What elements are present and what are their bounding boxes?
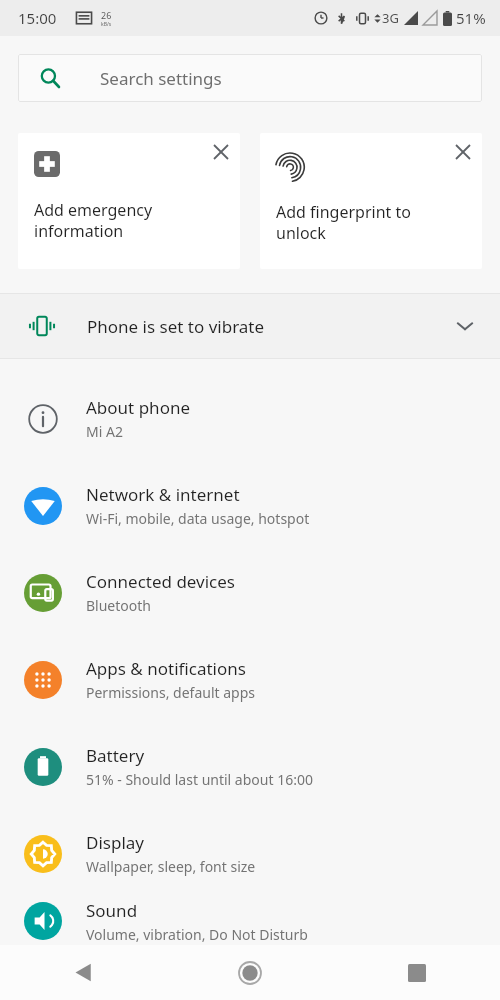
staticText: Bluetooth (86, 596, 151, 615)
button[interactable]: Home (166, 945, 333, 1000)
staticText: Add emergency information (34, 199, 153, 242)
staticText: 51% (456, 8, 486, 28)
staticText: 51% - Should last until about 16:00 (86, 770, 313, 789)
staticText: Permissions, default apps (86, 683, 256, 702)
staticText: Sound (86, 899, 138, 922)
button[interactable]: Display (0, 810, 500, 897)
button[interactable]: Apps & notifications (0, 636, 500, 723)
button[interactable]: Battery (0, 723, 500, 810)
button[interactable]: Dismiss (444, 133, 482, 171)
staticText: Wallpaper, sleep, font size (86, 857, 256, 876)
button[interactable]: About phone (0, 375, 500, 462)
staticText: Mi A2 (86, 422, 123, 441)
staticText: Wi-Fi, mobile, data usage, hotspot (86, 509, 310, 528)
button[interactable]: Back (0, 945, 166, 1000)
staticText: Phone is set to vibrate (87, 315, 265, 338)
staticText: Apps & notifications (86, 657, 246, 680)
staticText: 3G (382, 9, 399, 27)
button[interactable]: Add emergency information (18, 133, 240, 269)
staticText: 15:00 (18, 8, 57, 28)
button[interactable]: Recent apps (333, 945, 500, 1000)
staticText: Search settings (100, 67, 222, 90)
button[interactable]: Connected devices (0, 549, 500, 636)
button[interactable]: Dismiss (202, 133, 240, 171)
staticText: kB/s (101, 21, 112, 28)
staticText: Volume, vibration, Do Not Disturb (86, 925, 308, 944)
staticText: Add fingerprint to unlock (276, 201, 411, 244)
staticText: 26 (101, 9, 112, 21)
staticText: Connected devices (86, 570, 236, 593)
button[interactable]: Phone is set to vibrate (0, 294, 500, 358)
button[interactable]: Network & internet (0, 462, 500, 549)
staticText: Battery (86, 744, 145, 767)
button[interactable]: Add fingerprint to unlock (260, 133, 482, 269)
button[interactable]: Search settings (18, 54, 482, 102)
staticText: Display (86, 831, 144, 854)
staticText: About phone (86, 396, 191, 419)
staticText: Network & internet (86, 483, 240, 506)
button[interactable]: Sound (0, 897, 500, 945)
